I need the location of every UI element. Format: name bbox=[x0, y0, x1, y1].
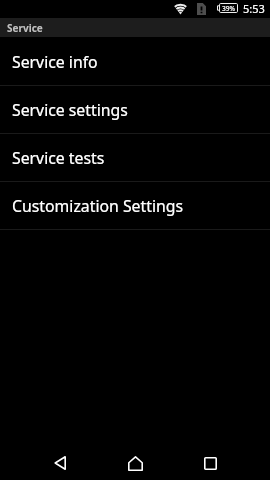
staticText: 39% bbox=[222, 4, 236, 13]
button[interactable]: Recents bbox=[186, 450, 234, 476]
button[interactable]: Service settings bbox=[0, 86, 270, 134]
button[interactable]: Service info bbox=[0, 38, 270, 86]
staticText: 5:53 bbox=[243, 1, 265, 16]
button[interactable]: Service tests bbox=[0, 134, 270, 182]
staticText: Service tests bbox=[12, 147, 105, 169]
staticText: Service settings bbox=[12, 99, 128, 121]
button[interactable]: Back bbox=[36, 450, 84, 476]
button[interactable]: Home bbox=[111, 450, 159, 476]
staticText: Customization Settings bbox=[12, 195, 184, 217]
button[interactable]: Customization Settings bbox=[0, 182, 270, 230]
staticText: Service info bbox=[12, 51, 98, 73]
staticText: Service bbox=[7, 21, 43, 35]
